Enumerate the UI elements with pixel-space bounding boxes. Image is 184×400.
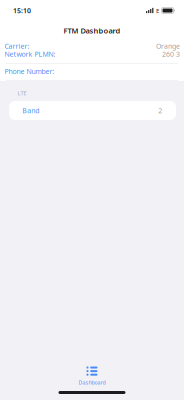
- button[interactable]: Band: [9, 101, 176, 120]
- staticText: Phone Number:: [4, 66, 54, 76]
- staticText: Orange: [156, 41, 180, 51]
- staticText: 260 3: [162, 49, 180, 59]
- staticText: 2: [158, 106, 162, 115]
- staticText: E: [156, 6, 159, 15]
- staticText: 15:10: [13, 6, 31, 15]
- staticText: LTE: [18, 89, 27, 97]
- button[interactable]: Carrier:: [0, 40, 184, 60]
- staticText: Network PLMN:: [4, 49, 55, 59]
- staticText: Band: [22, 106, 39, 115]
- staticText: Dashboard: [78, 379, 105, 386]
- button[interactable]: Phone Number:: [0, 64, 184, 77]
- staticText: Carrier:: [4, 41, 29, 51]
- staticText: FTM Dashboard: [63, 25, 120, 36]
- button[interactable]: Dashboard: [61, 366, 123, 388]
